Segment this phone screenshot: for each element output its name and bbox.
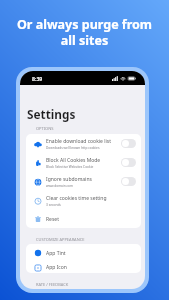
button[interactable]: Toggle [121, 158, 136, 167]
staticText: App Tint [46, 250, 66, 257]
other: App Tint [34, 249, 42, 257]
button[interactable]: App Tint [26, 244, 141, 262]
staticText: www.domain.com [46, 184, 73, 188]
other: Download [34, 140, 42, 148]
button[interactable]: Block [26, 153, 141, 172]
staticText: 8:39 [32, 75, 43, 82]
button[interactable]: App Icon [26, 262, 141, 273]
staticText: 3 seconds [46, 203, 61, 207]
button[interactable]: Toggle [121, 139, 136, 148]
staticText: Settings [27, 106, 76, 122]
button[interactable]: Timer [26, 191, 141, 210]
staticText: Block All Cookies Mode [46, 157, 101, 164]
button[interactable]: Toggle [121, 177, 136, 186]
staticText: Downloads well known http cookies [46, 146, 100, 150]
staticText: Block Selective Websites Cookie [46, 165, 94, 169]
button[interactable]: Domain [26, 172, 141, 191]
staticText: Enable download cookie list [46, 138, 111, 145]
staticText: Reset [46, 216, 59, 223]
staticText: App Icon [46, 264, 67, 271]
staticText: Ignore subdomains [46, 176, 92, 183]
staticText: RATE / FEEDBACK [36, 282, 69, 287]
other: Timer [34, 197, 42, 205]
staticText: OPTIONS [36, 126, 54, 131]
staticText: Or always purge from all sites [0, 16, 169, 49]
other: Domain [34, 178, 42, 186]
other: Reset [34, 215, 42, 223]
other: Block [34, 159, 42, 167]
button[interactable]: Reset [26, 210, 141, 228]
other: App Icon [34, 264, 42, 272]
button[interactable]: Download [26, 134, 141, 153]
staticText: Clear cookies time setting [46, 195, 107, 202]
staticText: CUSTOMIZE APPEARANCE [36, 237, 85, 242]
